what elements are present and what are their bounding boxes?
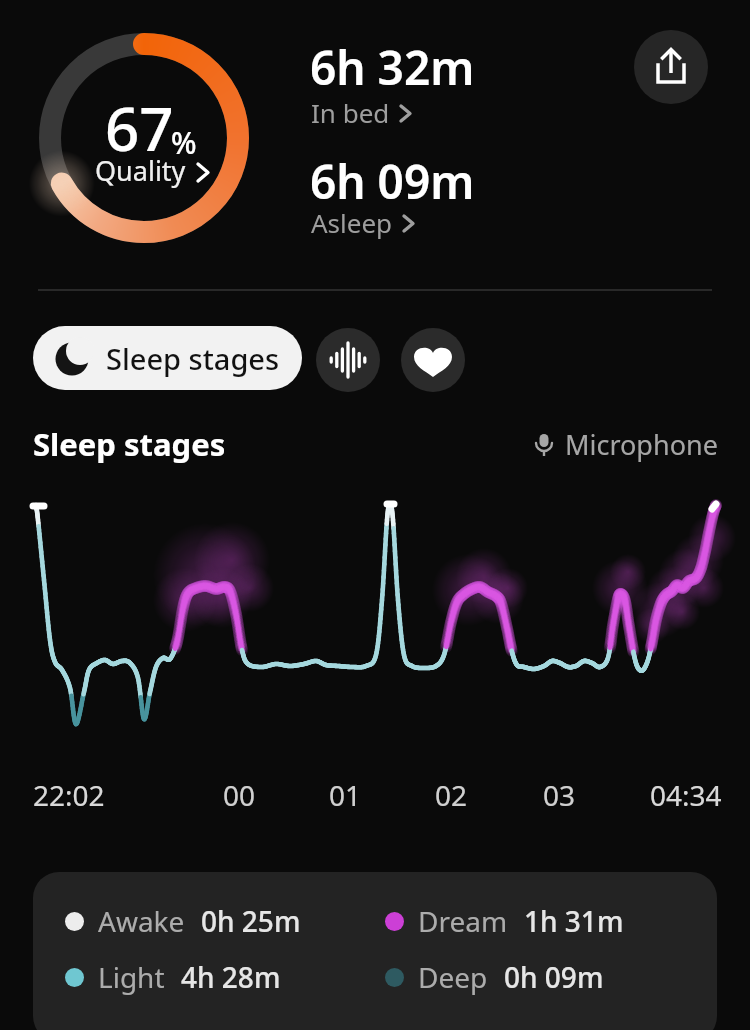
- button[interactable]: Deep: [385, 958, 604, 996]
- staticText: Dream: [418, 902, 508, 940]
- staticText: Asleep: [311, 205, 393, 240]
- staticText: 22:02: [33, 776, 105, 814]
- staticText: 6h 32m: [310, 36, 475, 99]
- staticText: 01: [329, 776, 362, 814]
- button[interactable]: Awake: [65, 902, 301, 940]
- staticText: Deep: [418, 958, 488, 996]
- button[interactable]: Light: [65, 958, 281, 996]
- button[interactable]: Microphone: [534, 426, 718, 463]
- staticText: Sleep stages: [33, 423, 226, 465]
- staticText: 1h 31m: [524, 902, 624, 940]
- staticText: 03: [543, 776, 576, 814]
- button[interactable]: [401, 328, 465, 392]
- staticText: Microphone: [565, 426, 718, 463]
- button[interactable]: [634, 30, 708, 104]
- staticText: 6h 09m: [310, 150, 475, 213]
- staticText: 00: [223, 776, 256, 814]
- staticText: 0h 25m: [201, 902, 301, 940]
- button[interactable]: In bed: [311, 95, 413, 130]
- staticText: 04:34: [650, 776, 722, 814]
- staticText: Light: [98, 958, 165, 996]
- staticText: 0h 09m: [504, 958, 604, 996]
- staticText: Awake: [98, 902, 185, 940]
- button[interactable]: Dream: [385, 902, 624, 940]
- button[interactable]: [60, 60, 228, 228]
- button[interactable]: Sleep stages: [33, 326, 302, 390]
- staticText: 4h 28m: [181, 958, 281, 996]
- staticText: In bed: [311, 95, 390, 130]
- button[interactable]: [316, 328, 380, 392]
- staticText: Sleep stages: [106, 339, 280, 378]
- staticText: 67: [105, 87, 174, 169]
- button[interactable]: Asleep: [311, 205, 416, 240]
- staticText: %: [171, 122, 197, 163]
- staticText: Quality: [95, 152, 186, 189]
- staticText: 02: [435, 776, 468, 814]
